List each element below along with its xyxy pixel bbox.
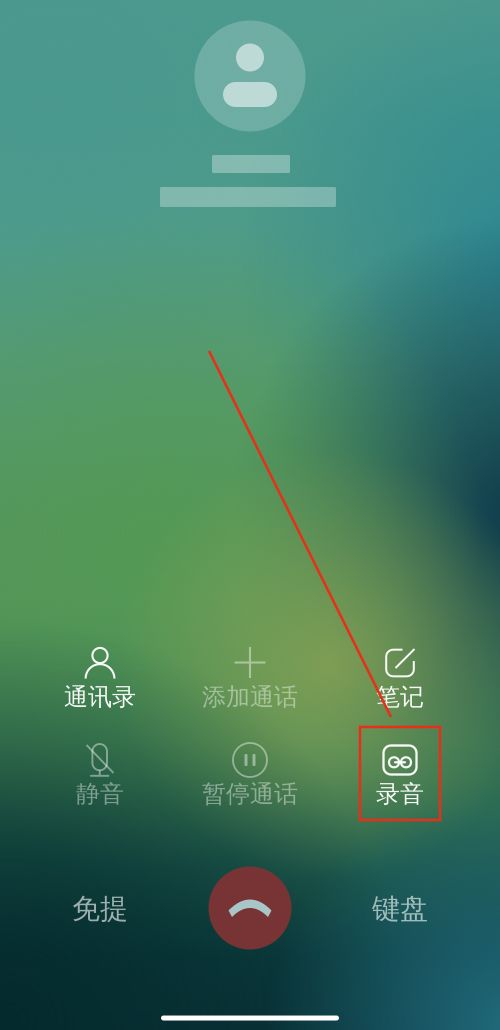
button[interactable]: End call bbox=[0, 0, 500, 1030]
staticText: 键盘 bbox=[372, 892, 428, 926]
staticText: 通讯录 bbox=[64, 682, 136, 712]
button[interactable]: 笔记 bbox=[0, 0, 500, 1030]
button[interactable]: 暂停通话 bbox=[0, 0, 500, 1030]
button[interactable]: 键盘 bbox=[0, 0, 500, 1030]
staticText: 静音 bbox=[76, 779, 124, 809]
button[interactable]: 静音 bbox=[0, 0, 500, 1030]
button[interactable]: 添加通话 bbox=[0, 0, 500, 1030]
button[interactable]: 通讯录 bbox=[0, 0, 500, 1030]
staticText: 添加通话 bbox=[202, 682, 298, 712]
button[interactable]: 录音 bbox=[0, 0, 500, 1030]
button[interactable]: 免提 bbox=[0, 0, 500, 1030]
staticText: 免提 bbox=[72, 892, 128, 926]
staticText: 笔记 bbox=[376, 682, 424, 712]
staticText: 录音 bbox=[376, 779, 424, 809]
staticText: 暂停通话 bbox=[202, 779, 298, 809]
